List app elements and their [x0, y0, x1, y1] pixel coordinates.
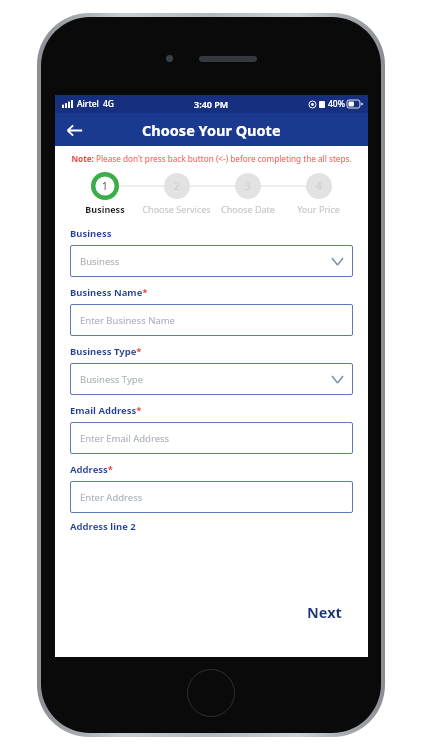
staticText: 40%: [328, 98, 345, 110]
staticText: Choose Date: [221, 203, 275, 215]
staticText: Business: [85, 203, 125, 215]
staticText: Enter Address: [80, 491, 143, 504]
staticText: 2: [174, 179, 180, 193]
button[interactable]: Enter Address: [70, 481, 353, 513]
staticText: Business Name*: [70, 286, 148, 299]
staticText: 3: [245, 179, 251, 193]
button[interactable]: Business Type: [70, 363, 353, 395]
button[interactable]: Business: [70, 245, 353, 277]
button[interactable]: Next: [301, 599, 348, 625]
staticText: Enter Business Name: [80, 314, 175, 327]
staticText: Business Type*: [70, 345, 142, 358]
staticText: 1: [102, 179, 108, 193]
button[interactable]: 2: [141, 172, 212, 215]
staticText: Address line 2: [70, 520, 136, 533]
staticText: Airtel: [77, 98, 99, 110]
staticText: Business Type: [80, 373, 143, 386]
button[interactable]: Back: [59, 115, 89, 145]
button[interactable]: Enter Email Address: [70, 422, 353, 454]
staticText: Choose Services: [142, 203, 211, 215]
button[interactable]: 4: [283, 172, 354, 215]
staticText: Next: [307, 602, 342, 622]
staticText: Business: [80, 255, 120, 268]
staticText: 4G: [103, 98, 115, 110]
staticText: 4: [316, 179, 322, 193]
staticText: Note: Please don't press back button (<-…: [71, 153, 352, 164]
staticText: Your Price: [297, 203, 340, 215]
button[interactable]: Enter Business Name: [70, 304, 353, 336]
staticText: Email Address*: [70, 404, 142, 417]
staticText: 3:40 PM: [194, 98, 229, 110]
button[interactable]: 3: [212, 172, 283, 215]
button[interactable]: 1: [69, 172, 141, 215]
staticText: Business: [70, 227, 112, 240]
staticText: Choose Your Quote: [142, 120, 281, 140]
staticText: Enter Email Address: [80, 432, 170, 445]
staticText: Address*: [70, 463, 113, 476]
